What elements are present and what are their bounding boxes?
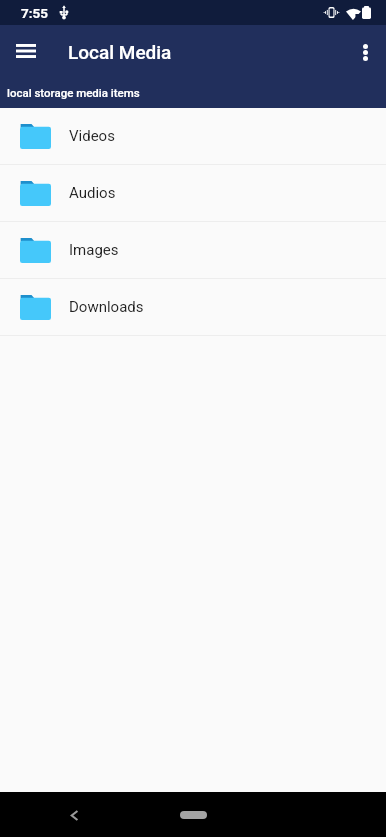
button[interactable]: Downloads	[0, 279, 386, 336]
staticText: Downloads	[69, 298, 144, 316]
button[interactable]: Images	[0, 222, 386, 279]
button[interactable]: Home	[180, 811, 207, 819]
staticText: Images	[69, 241, 119, 259]
button[interactable]: Back	[59, 800, 89, 830]
staticText: Local Media	[68, 41, 172, 63]
button[interactable]: Audios	[0, 165, 386, 222]
button[interactable]: More options	[345, 32, 385, 72]
button[interactable]: Open navigation drawer	[6, 32, 46, 72]
button[interactable]: Videos	[0, 108, 386, 165]
staticText: Videos	[69, 127, 115, 145]
staticText: Audios	[69, 184, 116, 202]
staticText: 7:55	[21, 5, 49, 21]
staticText: local storage media items	[7, 86, 140, 99]
